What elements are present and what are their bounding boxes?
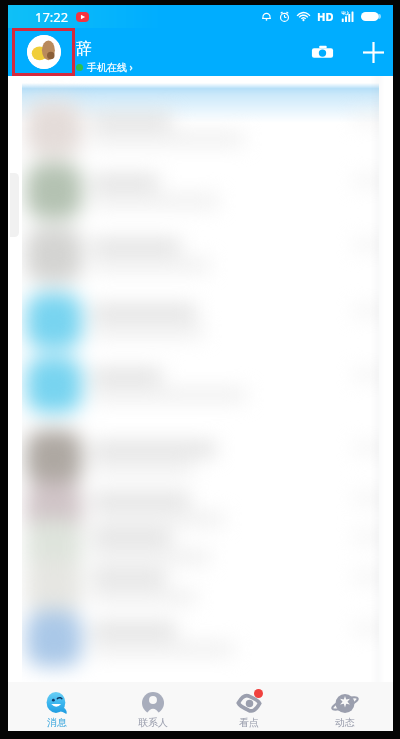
staticText: 联系人: [138, 716, 168, 729]
button[interactable]: 动态: [297, 685, 393, 729]
button[interactable]: 看点: [201, 685, 297, 729]
staticText: 17:22: [35, 8, 69, 26]
staticText: 辞: [76, 39, 92, 59]
staticText: 消息: [47, 716, 67, 729]
button[interactable]: Profile: [12, 28, 75, 76]
staticText: 手机在线 ›: [87, 60, 133, 74]
button[interactable]: 消息: [8, 685, 105, 729]
button[interactable]: Camera: [300, 30, 344, 74]
staticText: HD: [317, 9, 334, 24]
button[interactable]: 联系人: [105, 685, 201, 729]
button[interactable]: Add: [351, 30, 395, 74]
staticText: 看点: [239, 716, 259, 729]
staticText: 动态: [335, 716, 355, 729]
